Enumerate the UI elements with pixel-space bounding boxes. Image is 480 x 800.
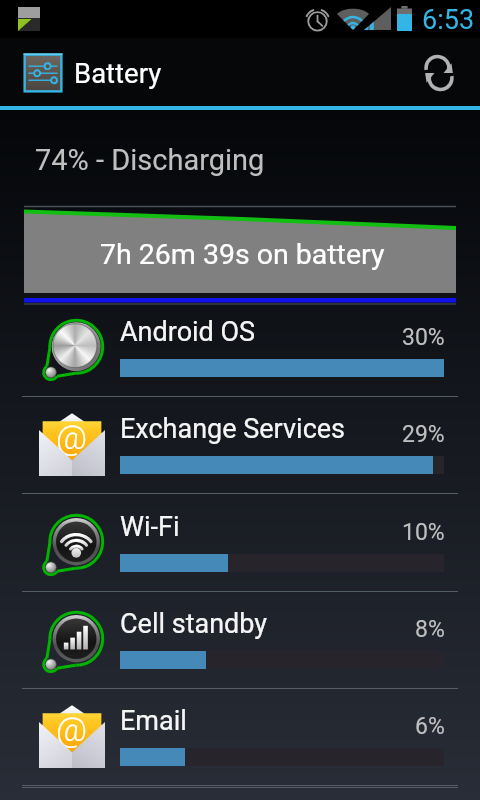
staticText: 8%	[415, 616, 445, 643]
staticText: 10%	[402, 519, 445, 546]
staticText: 6:53	[422, 4, 475, 36]
staticText: @	[56, 417, 88, 457]
button[interactable]: @	[0, 397, 480, 494]
button[interactable]: @	[0, 689, 480, 786]
button[interactable]: Refresh	[412, 38, 480, 106]
staticText: 7h 26m 39s on battery	[100, 238, 385, 271]
staticText: Android OS	[120, 316, 256, 348]
staticText: Battery	[74, 57, 162, 89]
staticText: Exchange Services	[120, 413, 346, 445]
staticText: Cell standby	[120, 608, 268, 640]
staticText: 74% - Discharging	[35, 143, 265, 177]
staticText: @	[56, 709, 88, 749]
staticText: Email	[120, 705, 187, 737]
button[interactable]: Wi-Fi	[0, 495, 480, 592]
staticText: 30%	[402, 324, 445, 351]
staticText: 6%	[415, 713, 445, 740]
button[interactable]: Android OS	[0, 300, 480, 397]
staticText: Wi-Fi	[120, 511, 180, 543]
button[interactable]: Cell standby	[0, 592, 480, 689]
staticText: 29%	[402, 421, 445, 448]
